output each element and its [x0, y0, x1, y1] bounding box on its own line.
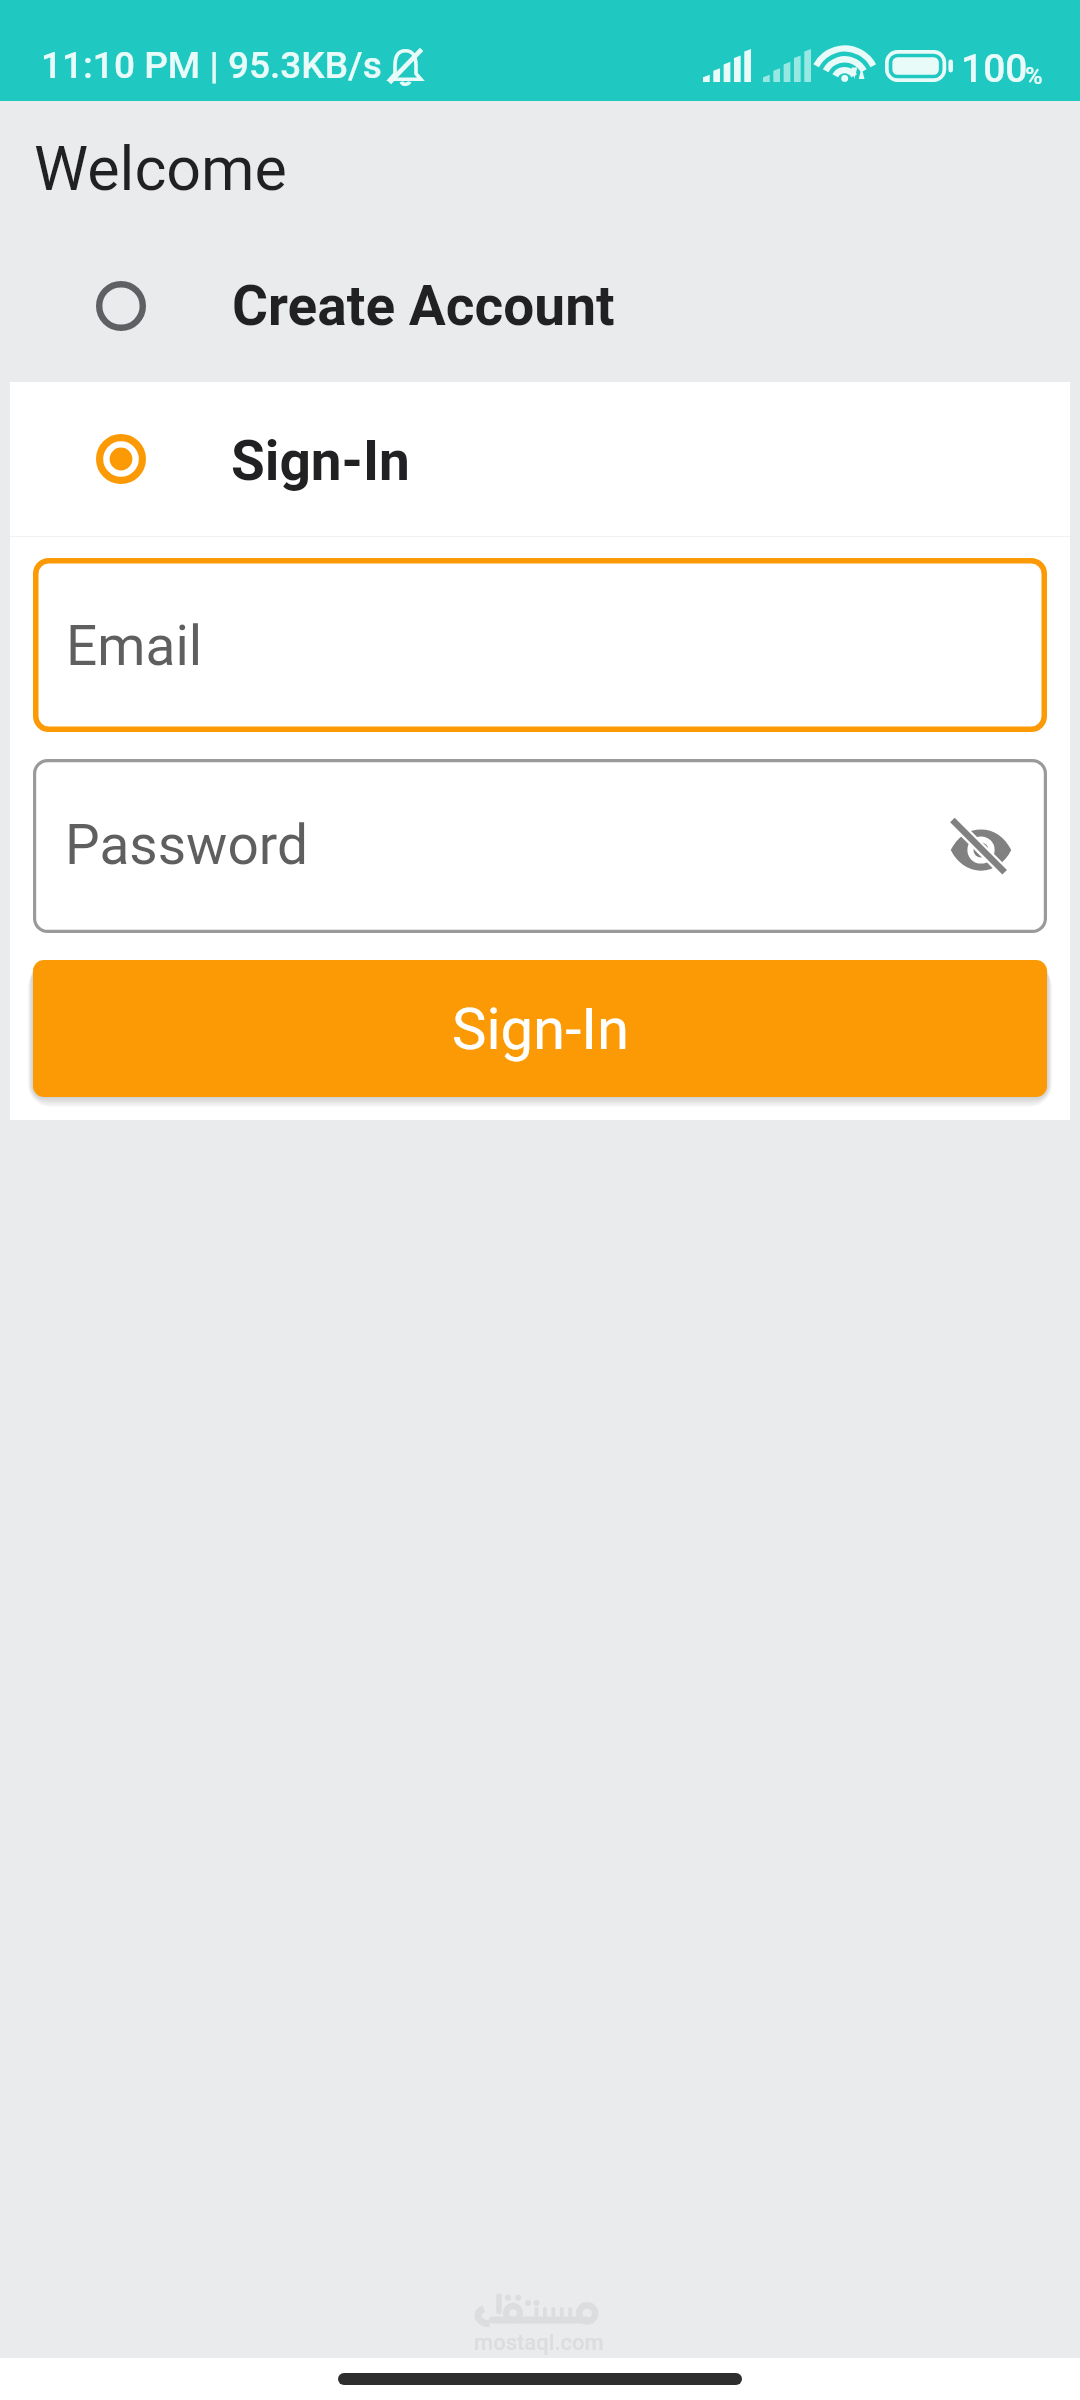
staticText: Create Account — [232, 274, 615, 338]
button[interactable]: Sign-In — [10, 382, 1070, 536]
button[interactable]: Sign-In — [33, 960, 1047, 1097]
staticText: mostaql.com — [474, 2330, 604, 2356]
button[interactable]: Password — [33, 759, 1047, 933]
button[interactable]: Home — [338, 2373, 742, 2385]
staticText: Password — [65, 813, 308, 877]
staticText: 11:10 PM | 95.3KB/s — [41, 44, 382, 87]
button[interactable]: Show password — [948, 817, 1014, 883]
staticText: Welcome — [34, 133, 287, 204]
staticText: Email — [66, 614, 203, 678]
staticText: 100 — [961, 46, 1028, 92]
staticText: Sign-In — [452, 995, 629, 1063]
button[interactable]: Create Account — [0, 249, 1080, 362]
staticText: % — [1025, 62, 1043, 90]
button[interactable]: Email — [33, 558, 1047, 732]
staticText: Sign-In — [231, 429, 410, 493]
